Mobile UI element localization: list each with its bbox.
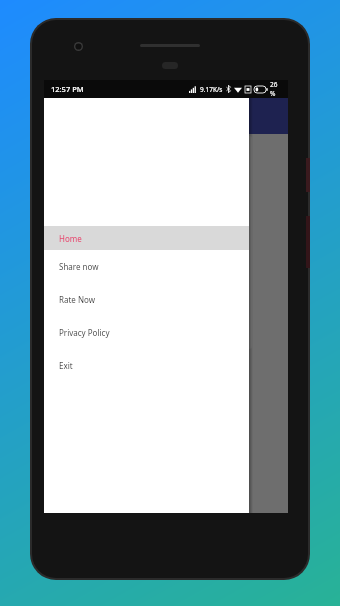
staticText: 26% bbox=[270, 80, 282, 98]
staticText: 12:57 PM bbox=[51, 84, 84, 94]
staticText: Rate Now bbox=[59, 294, 95, 305]
button[interactable]: Home bbox=[44, 226, 249, 250]
staticText: Exit bbox=[59, 360, 73, 371]
staticText: 9.17K/s bbox=[200, 85, 223, 94]
button[interactable]: Exit bbox=[44, 349, 249, 382]
button[interactable]: Rate Now bbox=[44, 283, 249, 316]
staticText: Share now bbox=[59, 261, 99, 272]
staticText: Home bbox=[59, 233, 82, 244]
staticText: Privacy Policy bbox=[59, 327, 110, 338]
button[interactable]: Privacy Policy bbox=[44, 316, 249, 349]
button[interactable]: Share now bbox=[44, 250, 249, 283]
